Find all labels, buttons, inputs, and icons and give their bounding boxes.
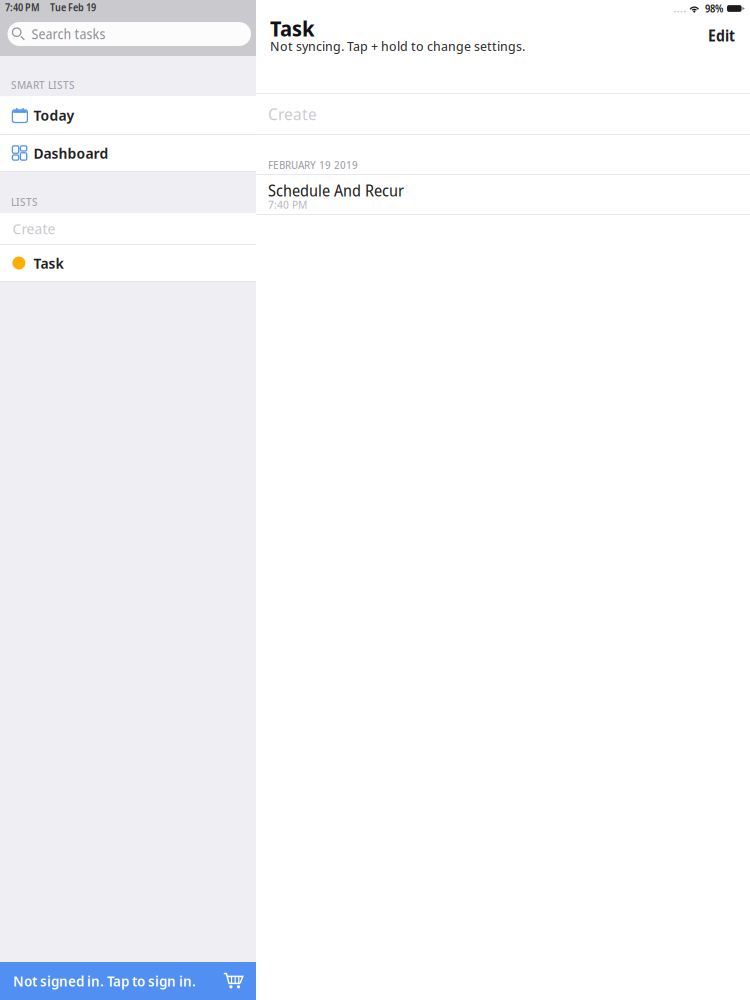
staticText: Search tasks (31, 25, 105, 43)
staticText: Dashboard (33, 143, 108, 163)
button[interactable]: Search tasks (7, 22, 251, 46)
staticText: 7:40 PM (5, 1, 40, 14)
button[interactable]: Create (256, 94, 750, 134)
staticText: LISTS (11, 195, 38, 209)
staticText: 7:40 PM (268, 197, 307, 212)
button[interactable]: Today (0, 96, 256, 135)
button[interactable]: Dashboard (0, 135, 256, 172)
staticText: 98% (705, 2, 723, 15)
button[interactable]: Task (0, 245, 256, 282)
staticText: Today (33, 105, 74, 125)
staticText: Create (268, 103, 317, 125)
staticText: FEBRUARY 19 2019 (268, 158, 358, 172)
staticText: Task (33, 253, 63, 273)
staticText: Create (12, 218, 55, 238)
staticText: Task (270, 13, 315, 43)
button[interactable]: Not signed in. Tap to sign in. (0, 962, 256, 1000)
staticText: Not signed in. Tap to sign in. (13, 971, 196, 991)
staticText: Schedule And Recur (268, 180, 404, 201)
button[interactable]: Schedule And Recur (256, 175, 750, 214)
staticText: Edit (708, 25, 735, 46)
staticText: Tue Feb 19 (50, 1, 96, 14)
button[interactable]: Edit (690, 14, 750, 56)
staticText: SMART LISTS (11, 78, 75, 92)
button[interactable]: Create (0, 213, 256, 245)
staticText: Not syncing. Tap + hold to change settin… (270, 37, 525, 55)
